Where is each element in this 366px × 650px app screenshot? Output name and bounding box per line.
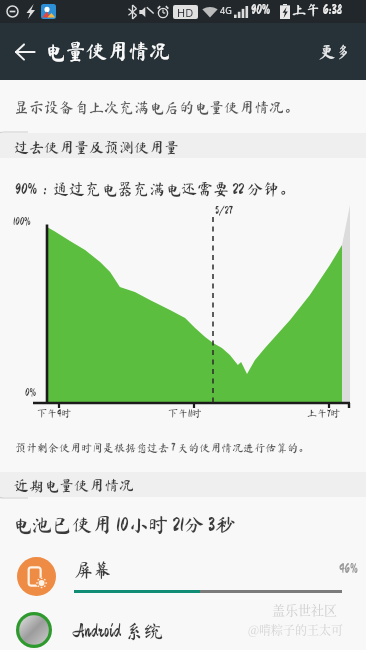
button[interactable]: 返回 — [9, 36, 41, 68]
staticText: 100% — [13, 216, 31, 227]
staticText: 5/27 — [215, 205, 233, 216]
button[interactable]: 屏幕 — [0, 545, 366, 607]
staticText: 4G — [220, 4, 232, 16]
staticText: 显示设备自上次充满电后的电量使用情况。 — [14, 100, 300, 115]
staticText: 下午4时 — [37, 408, 72, 418]
staticText: 下午11时 — [168, 408, 203, 418]
staticText: @啃粽子的王太可 — [248, 621, 343, 638]
button[interactable]: Android 系统 — [0, 610, 366, 650]
staticText: 上午7时 — [307, 408, 341, 418]
staticText: 46% — [339, 563, 358, 576]
staticText: 盖乐世社区 — [272, 600, 338, 619]
staticText: 上午 6:38 — [292, 3, 342, 17]
staticText: 更多 — [319, 44, 352, 60]
staticText: 屏幕 — [74, 560, 113, 579]
staticText: 电量使用情况 — [44, 41, 170, 62]
staticText: Android 系统 — [73, 621, 163, 640]
button[interactable]: 更多 — [305, 32, 366, 72]
staticText: 过去使用量及预测使用量 — [14, 140, 180, 155]
staticText: 90%：通过充电器充满电还需要 22 分钟。 — [15, 181, 296, 197]
staticText: 近期电量使用情况 — [14, 478, 135, 493]
staticText: 预计剩余使用时间是根据您过去 7 天的使用情况进行估算的。 — [15, 442, 310, 453]
staticText: 电池已使用 10小时 21分 3秒 — [12, 514, 236, 534]
staticText: 0% — [25, 387, 36, 398]
staticText: 90% — [251, 3, 271, 17]
staticText: HD — [177, 5, 194, 19]
